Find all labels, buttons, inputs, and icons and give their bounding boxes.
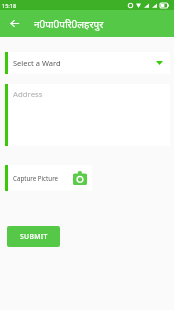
button[interactable]: Select a Ward [5,52,170,74]
staticText: न0पा0परि0लहरपुर [34,17,104,31]
button[interactable]: Capture Picture [73,171,87,185]
staticText: 15:18 [2,2,17,9]
button[interactable]: Back [6,15,23,32]
staticText: Select a Ward [13,58,61,68]
staticText: SUBMIT [20,232,48,241]
staticText: Address [13,89,43,100]
button[interactable]: SUBMIT [7,226,60,247]
staticText: Capture Picture [13,174,59,182]
button[interactable]: Address [5,84,170,146]
